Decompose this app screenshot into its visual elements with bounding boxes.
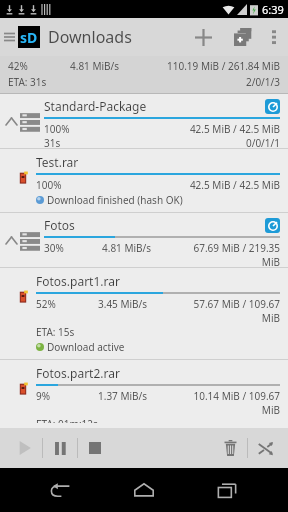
button[interactable]: Collapse group (2, 231, 20, 249)
button[interactable]: Home (122, 468, 166, 512)
staticText: 57.67 MiB / 109.67 MiB (176, 297, 280, 325)
staticText: ETA: 01m:12s (36, 417, 98, 423)
button[interactable]: Pause (43, 431, 77, 465)
staticText: 9% (36, 389, 98, 403)
staticText: ETA: 31s (8, 75, 47, 89)
button[interactable]: Extract (265, 99, 280, 114)
staticText: 4.81 MiB/s (102, 241, 176, 255)
button[interactable]: Delete (213, 431, 247, 465)
staticText: Fotos.part1.rar (36, 273, 120, 289)
staticText: 67.69 MiB / 219.35 MiB (176, 241, 280, 267)
staticText: 2/0/1/3 (47, 75, 280, 89)
staticText: 0/0/1/1 (61, 136, 280, 148)
staticText: Download active (47, 340, 125, 354)
staticText: 4.81 MiB/s (70, 59, 152, 73)
button[interactable]: Start (8, 431, 42, 465)
button[interactable]: Fotos.part2.rar (0, 360, 288, 428)
staticText: 42.5 MiB / 42.5 MiB (176, 122, 280, 136)
staticText: 10.14 MiB / 109.67 MiB (176, 389, 280, 417)
button[interactable]: Stop (78, 431, 112, 465)
staticText: Downloads (48, 26, 132, 48)
staticText: Test.rar (36, 154, 79, 170)
button[interactable]: Recent apps (205, 468, 249, 512)
button[interactable]: Collapse group (2, 112, 20, 130)
staticText: 110.19 MiB / 261.84 MiB (152, 59, 280, 73)
button[interactable]: Add multiple (226, 20, 260, 54)
button[interactable]: Back (39, 468, 83, 512)
button[interactable]: Fotos.part1.rar (0, 268, 288, 360)
button[interactable]: Navigation drawer (0, 18, 18, 56)
staticText: 30% (44, 241, 102, 255)
staticText: 31s (44, 136, 61, 148)
button[interactable]: Collapse group (0, 213, 288, 268)
staticText: sD (20, 28, 38, 47)
staticText: Download finished (hash OK) (47, 193, 183, 207)
staticText: Fotos.part2.rar (36, 365, 120, 381)
button[interactable]: Extract (265, 218, 280, 233)
staticText: Standard-Package (44, 98, 265, 114)
button[interactable]: Shuffle (248, 431, 282, 465)
staticText: 6:39 (262, 2, 284, 17)
staticText: 1.37 MiB/s (98, 389, 176, 403)
staticText: 52% (36, 297, 98, 311)
button[interactable]: Add download (186, 20, 220, 54)
button[interactable]: Collapse group (0, 94, 288, 149)
staticText: ETA: 15s (36, 325, 75, 339)
staticText: Fotos (44, 217, 265, 233)
staticText: 3.45 MiB/s (98, 297, 176, 311)
staticText: 100% (36, 178, 98, 192)
staticText: 100% (44, 122, 102, 136)
staticText: 42.5 MiB / 42.5 MiB (176, 178, 280, 192)
button[interactable]: Test.rar (0, 149, 288, 213)
staticText: 42% (8, 59, 70, 73)
button[interactable]: More options (260, 23, 288, 51)
